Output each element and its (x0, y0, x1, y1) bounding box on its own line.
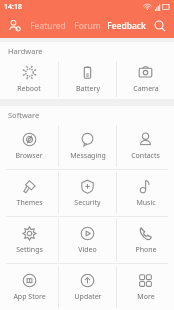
staticText: Security (74, 198, 101, 208)
staticText: Phone (135, 245, 157, 255)
staticText: App Store (13, 292, 46, 302)
staticText: Settings (16, 245, 43, 255)
staticText: Themes (16, 198, 43, 208)
staticText: Contacts (131, 151, 160, 161)
button[interactable]: Feedback (107, 13, 146, 38)
button[interactable]: More (117, 264, 174, 310)
staticText: Camera (133, 84, 159, 94)
staticText: Hardware (8, 46, 43, 56)
staticText: More (137, 292, 155, 302)
button[interactable]: Settings (0, 217, 58, 263)
staticText: Browser (15, 151, 43, 161)
button[interactable]: Featured (28, 13, 68, 38)
staticText: Forum (74, 20, 101, 32)
staticText: Reboot (17, 84, 41, 94)
button[interactable]: Video (59, 217, 116, 263)
button[interactable]: Browser (0, 123, 58, 169)
staticText: Music (136, 198, 156, 208)
button[interactable]: Search (146, 13, 174, 38)
button[interactable]: Battery (59, 59, 116, 99)
button[interactable]: Phone (117, 217, 174, 263)
staticText: Video (78, 245, 97, 255)
staticText: Featured (30, 20, 66, 32)
button[interactable]: Security (59, 170, 116, 216)
button[interactable]: App Store (0, 264, 58, 310)
staticText: Battery (76, 84, 100, 94)
staticText: Messaging (70, 151, 106, 161)
button[interactable]: Themes (0, 170, 58, 216)
button[interactable]: Reboot (0, 59, 58, 99)
staticText: Updater (74, 292, 102, 302)
button[interactable]: Forum (68, 13, 107, 38)
button[interactable]: Account (0, 13, 28, 38)
button[interactable]: Messaging (59, 123, 116, 169)
button[interactable]: Updater (59, 264, 116, 310)
button[interactable]: Music (117, 170, 174, 216)
button[interactable]: Camera (117, 59, 174, 99)
staticText: 14:18 (4, 2, 22, 12)
button[interactable]: Contacts (117, 123, 174, 169)
staticText: Feedback (107, 20, 146, 32)
staticText: Software (8, 110, 40, 120)
